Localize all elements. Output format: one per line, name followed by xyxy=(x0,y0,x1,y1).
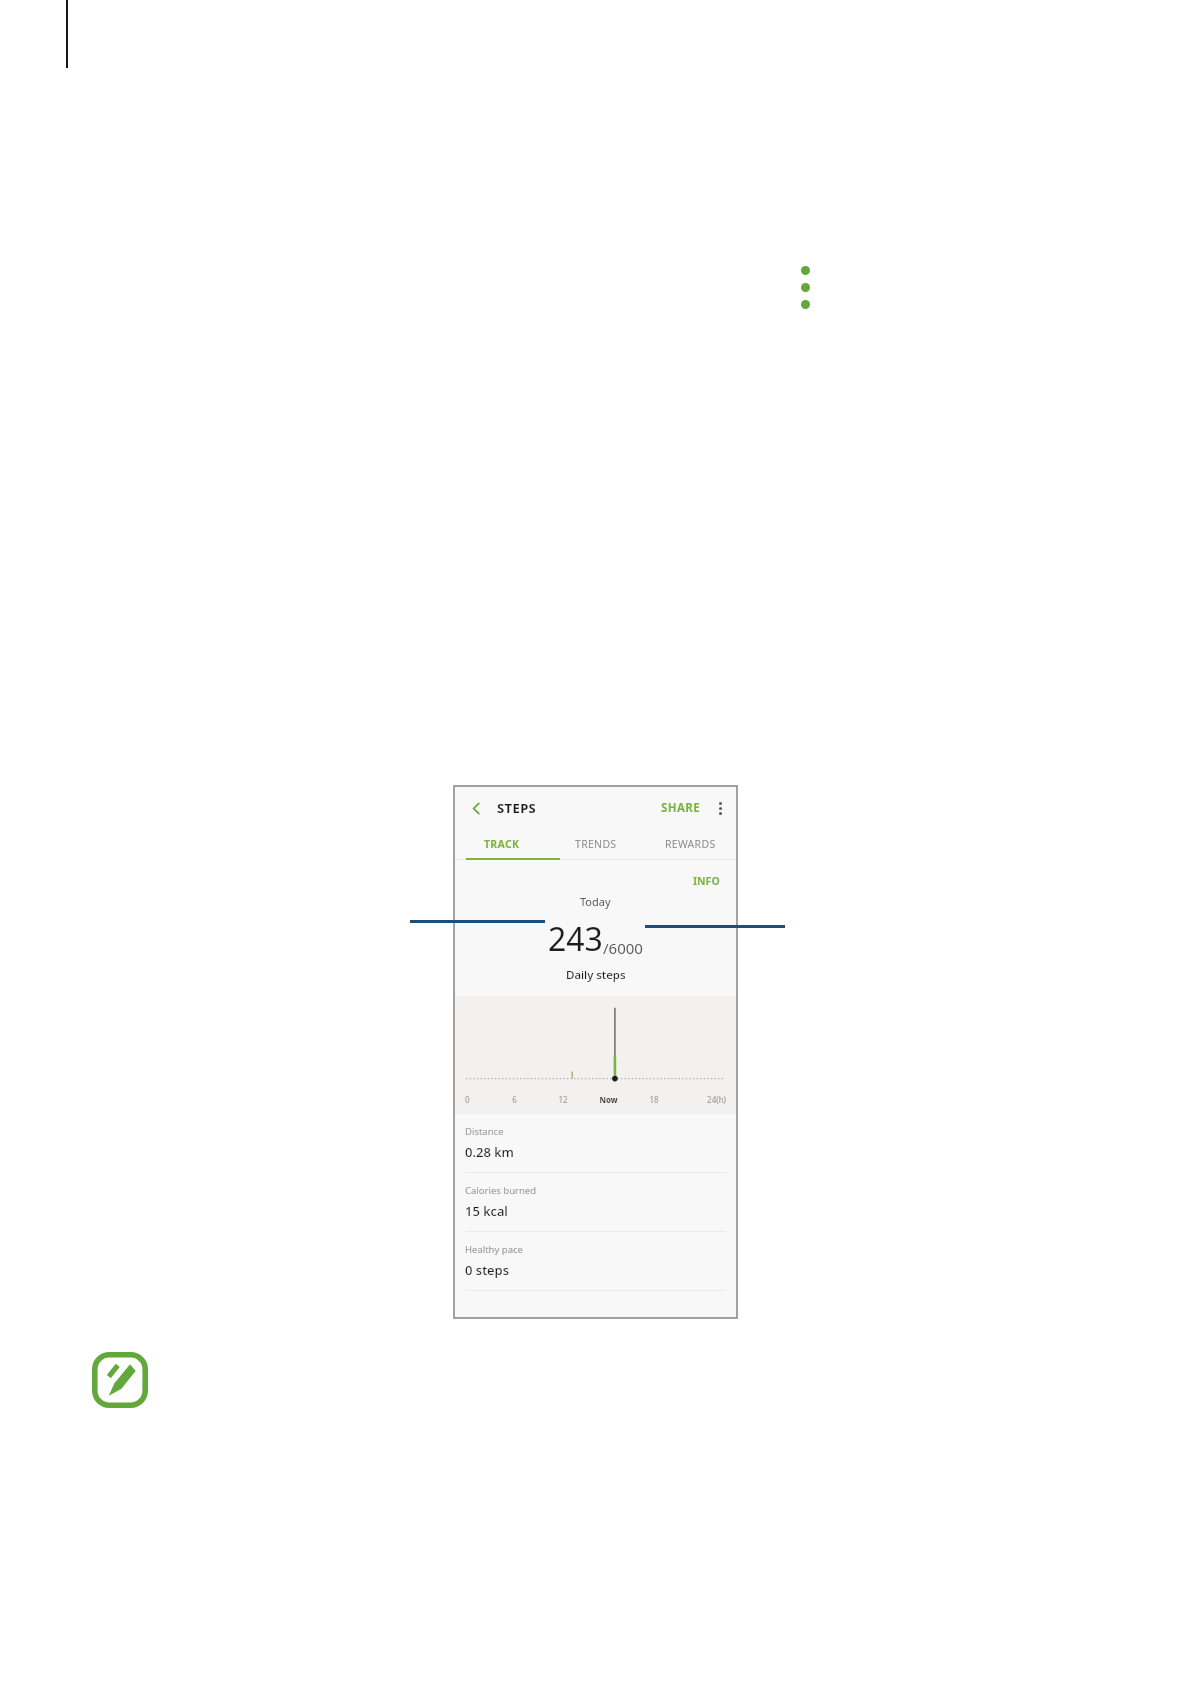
staticText: INFO xyxy=(693,874,720,888)
button[interactable]: INFO xyxy=(690,871,723,891)
staticText: STEPS xyxy=(497,799,537,817)
button[interactable]: SHARE xyxy=(658,796,704,820)
button[interactable]: Distance xyxy=(454,1114,737,1172)
staticText: SHARE xyxy=(661,800,701,816)
staticText: 0.28 km xyxy=(465,1143,514,1161)
staticText: 0 steps xyxy=(465,1261,509,1279)
button[interactable]: Back xyxy=(465,797,487,819)
staticText: REWARDS xyxy=(665,837,716,851)
staticText: Today xyxy=(580,894,611,909)
button[interactable]: Healthy pace xyxy=(454,1232,737,1290)
staticText: Now xyxy=(587,1094,630,1105)
staticText: TRACK xyxy=(484,837,520,851)
staticText: 243 xyxy=(548,917,603,961)
button[interactable]: REWARDS xyxy=(643,837,737,851)
button[interactable]: TRENDS xyxy=(549,837,643,851)
staticText: /6000 xyxy=(603,938,643,958)
staticText: Distance xyxy=(465,1125,504,1138)
staticText: Calories burned xyxy=(465,1184,536,1197)
staticText: Healthy pace xyxy=(465,1243,523,1256)
button[interactable]: Calories burned xyxy=(454,1173,737,1231)
button[interactable]: More options xyxy=(713,796,727,820)
staticText: 24(h) xyxy=(678,1094,726,1105)
staticText: 12 xyxy=(539,1094,587,1105)
staticText: Daily steps xyxy=(566,967,626,983)
button[interactable]: More options xyxy=(792,266,818,318)
staticText: 15 kcal xyxy=(465,1202,508,1220)
staticText: 6 xyxy=(490,1094,539,1105)
button[interactable]: TRACK xyxy=(454,837,549,851)
staticText: 0 xyxy=(465,1094,490,1105)
staticText: TRENDS xyxy=(575,837,617,851)
staticText: 18 xyxy=(630,1094,678,1105)
